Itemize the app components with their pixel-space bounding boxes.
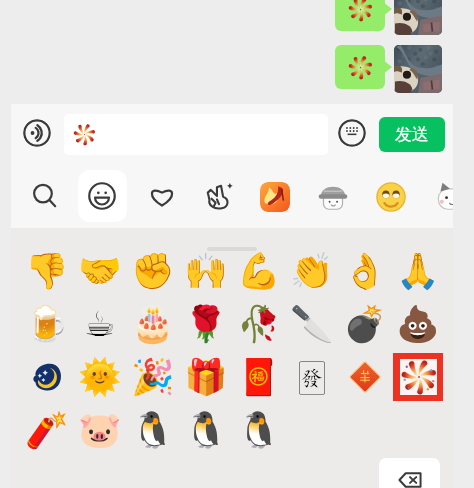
staticText: 🎂 xyxy=(131,304,175,345)
staticText: 🍺 xyxy=(25,304,69,345)
button[interactable]: Emoji xyxy=(128,246,178,296)
button[interactable]: Avatar xyxy=(394,45,442,93)
button[interactable]: Emoji xyxy=(128,352,178,402)
button[interactable]: Emoji xyxy=(340,246,390,296)
button[interactable]: Sticker message xyxy=(335,0,392,31)
button[interactable]: Emoji xyxy=(393,299,443,349)
button[interactable]: Sticker pack bear xyxy=(435,180,453,214)
button[interactable]: Emoji xyxy=(340,352,390,402)
staticText: 🎁 xyxy=(184,357,228,398)
button[interactable]: Emoji xyxy=(128,299,178,349)
button[interactable]: Emoji xyxy=(340,299,390,349)
staticText: 🎉 xyxy=(131,357,175,398)
button[interactable]: Emoji xyxy=(128,405,178,455)
button[interactable]: 发送 xyxy=(379,117,445,152)
staticText: 🀅 xyxy=(298,360,326,395)
button[interactable]: Night moon xyxy=(22,352,72,402)
button[interactable]: Emoji xyxy=(393,246,443,296)
staticText: 🤝 xyxy=(78,251,122,292)
button[interactable]: Emoji xyxy=(234,299,284,349)
staticText: 💣 xyxy=(343,304,387,345)
button[interactable]: Emoji xyxy=(287,246,337,296)
staticText: 🧧 xyxy=(237,357,281,398)
button[interactable]: Keyboard xyxy=(338,119,366,147)
button[interactable]: Emoji xyxy=(181,299,231,349)
staticText: 发送 xyxy=(395,124,429,145)
button[interactable]: Emoji xyxy=(393,352,443,402)
button[interactable]: Emoji xyxy=(234,405,284,455)
button[interactable]: Firework sticker, selected xyxy=(393,352,443,402)
button[interactable]: Search xyxy=(28,179,62,213)
button[interactable]: Delete xyxy=(379,458,440,488)
staticText: 💪 xyxy=(237,251,281,292)
button[interactable]: Emoji xyxy=(181,405,231,455)
staticText: 🥀 xyxy=(237,304,281,345)
button[interactable]: Sticker pack cat xyxy=(316,180,350,214)
button[interactable]: Emoji xyxy=(181,352,231,402)
staticText: 🐧 xyxy=(131,410,175,451)
button[interactable]: Emoji xyxy=(75,352,125,402)
staticText: ✊ xyxy=(131,251,175,292)
button[interactable]: Emoji xyxy=(75,405,125,455)
button[interactable]: Emoji xyxy=(234,246,284,296)
button[interactable]: Emoji xyxy=(287,299,337,349)
button[interactable]: Emoji xyxy=(22,405,72,455)
staticText: 🌹 xyxy=(184,304,228,345)
staticText: 🌞 xyxy=(78,357,122,398)
staticText: 👌 xyxy=(343,251,387,292)
staticText: 🔪 xyxy=(290,304,334,345)
button[interactable]: Emoji xyxy=(181,246,231,296)
staticText: 🐧 xyxy=(184,410,228,451)
staticText: 👏 xyxy=(290,251,334,292)
button[interactable]: Sticker message xyxy=(335,45,392,89)
staticText: 🐷 xyxy=(78,410,122,451)
button[interactable]: Stickers xyxy=(202,179,236,213)
button[interactable]: Emoji xyxy=(22,246,72,296)
button[interactable]: Sticker pack hot xyxy=(260,182,290,212)
button[interactable]: Emoji xyxy=(85,179,119,213)
button[interactable]: Spring couplet xyxy=(340,352,390,402)
button[interactable]: Emoji xyxy=(287,352,337,402)
button[interactable]: Emoji xyxy=(22,352,72,402)
button[interactable]: Favourites xyxy=(145,179,179,213)
staticText: 🧨 xyxy=(25,410,69,451)
button[interactable]: Emoji xyxy=(22,299,72,349)
button[interactable]: Message input xyxy=(64,114,328,155)
button[interactable]: Emoji xyxy=(75,299,125,349)
button[interactable]: Sticker pack smile xyxy=(376,182,406,212)
staticText: 👎 xyxy=(25,251,69,292)
staticText: ☕ xyxy=(84,304,116,345)
button[interactable]: Emoji xyxy=(75,246,125,296)
staticText: 💩 xyxy=(396,304,440,345)
staticText: 🙌 xyxy=(184,251,228,292)
staticText: 🐧 xyxy=(237,410,281,451)
button[interactable]: Voice input xyxy=(23,119,51,147)
staticText: 🙏 xyxy=(396,251,440,292)
button[interactable]: Avatar xyxy=(394,0,442,35)
button[interactable]: Emoji xyxy=(234,352,284,402)
